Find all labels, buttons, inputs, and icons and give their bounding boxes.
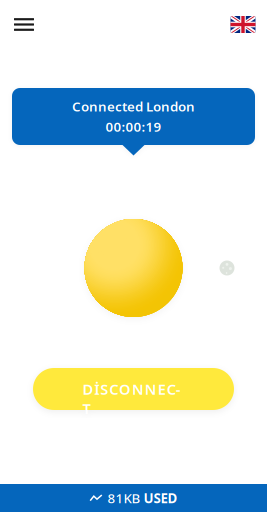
staticText: 81KB USED [108, 489, 178, 507]
staticText: DİSCONNECT [82, 379, 184, 399]
staticText: 00:00:19 [105, 118, 161, 135]
staticText: Connected London [72, 97, 195, 115]
button[interactable]: Menu [6, 6, 42, 42]
button[interactable]: 81KB USED [0, 484, 267, 512]
button[interactable]: DİSCONNECT [33, 368, 234, 410]
button[interactable]: Change region [225, 10, 260, 38]
